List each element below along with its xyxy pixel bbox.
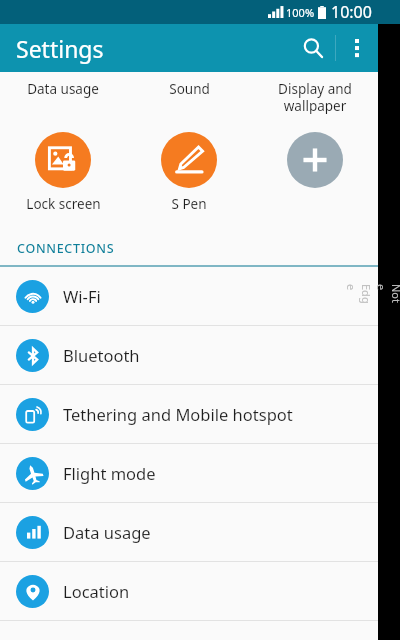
- staticText: Data usage: [63, 521, 151, 543]
- button[interactable]: Wi-Fi: [0, 267, 378, 325]
- staticText: Wi-Fi: [63, 285, 101, 307]
- staticText: 10:00: [331, 1, 372, 23]
- staticText: Tethering and Mobile hotspot: [63, 403, 293, 425]
- button[interactable]: Bluetooth: [0, 326, 378, 384]
- button[interactable]: Lock screen: [0, 132, 126, 213]
- staticText: Data usage: [27, 80, 99, 98]
- button[interactable]: Data usage: [0, 80, 126, 114]
- staticText: Bluetooth: [63, 344, 140, 366]
- button[interactable]: Search: [291, 26, 335, 70]
- staticText: 100%: [286, 5, 315, 20]
- staticText: CONNECTIONS: [17, 240, 115, 257]
- staticText: Lock screen: [26, 195, 101, 213]
- staticText: Location: [63, 580, 130, 602]
- button[interactable]: Display and wallpaper: [252, 80, 378, 114]
- staticText: Sound: [169, 80, 210, 98]
- staticText: Galaxy Note Edge: [344, 284, 400, 306]
- button[interactable]: More options: [336, 27, 378, 69]
- staticText: Settings: [16, 33, 104, 64]
- staticText: Flight mode: [63, 462, 156, 484]
- button[interactable]: Data usage: [0, 503, 378, 561]
- button[interactable]: Tethering and Mobile hotspot: [0, 385, 378, 443]
- button[interactable]: S Pen: [126, 132, 252, 213]
- button[interactable]: [252, 132, 378, 188]
- staticText: S Pen: [171, 195, 207, 213]
- button[interactable]: Sound: [126, 80, 252, 114]
- button[interactable]: Location: [0, 562, 378, 620]
- button[interactable]: Flight mode: [0, 444, 378, 502]
- staticText: Display and wallpaper: [278, 80, 352, 114]
